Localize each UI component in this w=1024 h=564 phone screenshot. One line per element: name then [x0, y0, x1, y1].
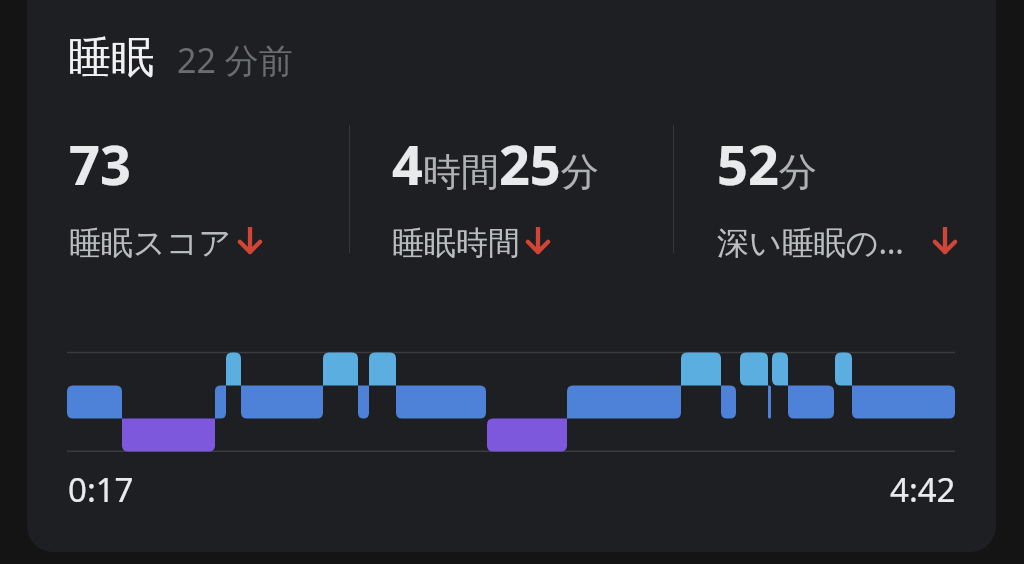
- other: Decreased: [934, 223, 956, 255]
- staticText: 0:17: [68, 467, 134, 512]
- staticText: 睡眠時間: [392, 223, 520, 263]
- staticText: 52分: [717, 127, 817, 201]
- other: Decreased: [527, 223, 549, 255]
- staticText: 73: [69, 127, 131, 201]
- button[interactable]: [27, 0, 996, 552]
- staticText: 睡眠: [68, 31, 154, 85]
- button[interactable]: 73: [69, 127, 261, 263]
- button[interactable]: 52分: [717, 127, 956, 267]
- staticText: 睡眠スコア: [69, 223, 232, 263]
- staticText: 22 分前: [177, 37, 293, 83]
- button[interactable]: Sleep stages chart: [60, 340, 960, 510]
- staticText: 深い睡眠の…: [717, 220, 904, 264]
- staticText: 4時間25分: [392, 127, 599, 201]
- other: Decreased: [239, 223, 261, 255]
- button[interactable]: 4時間25分: [392, 127, 599, 263]
- staticText: 4:42: [890, 467, 956, 512]
